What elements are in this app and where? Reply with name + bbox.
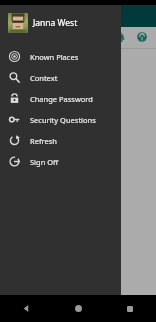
staticText: 1 <box>6 58 11 68</box>
button[interactable]: Janna West <box>0 5 121 41</box>
staticText: Security Questions <box>30 115 96 125</box>
button[interactable]: Home <box>52 295 104 322</box>
button[interactable]: Help <box>134 29 150 45</box>
staticText: Known Places <box>30 52 79 62</box>
button[interactable]: Change Password <box>0 88 121 109</box>
button[interactable]: Notifications <box>113 29 129 45</box>
button[interactable]: Known Places <box>0 46 121 67</box>
button[interactable]: Recent apps <box>104 295 156 322</box>
staticText: Refresh <box>30 136 57 146</box>
button[interactable]: Back <box>0 295 52 322</box>
staticText: Sign Off <box>30 157 59 167</box>
button[interactable]: Context <box>0 67 121 88</box>
button[interactable]: Sign Off <box>0 151 121 172</box>
button[interactable]: Security Questions <box>0 109 121 130</box>
staticText: Janna West <box>33 17 78 29</box>
button[interactable]: Refresh <box>0 130 121 151</box>
staticText: Context <box>30 73 58 83</box>
staticText: Change Password <box>30 94 93 104</box>
button[interactable]: 1 <box>2 57 15 68</box>
